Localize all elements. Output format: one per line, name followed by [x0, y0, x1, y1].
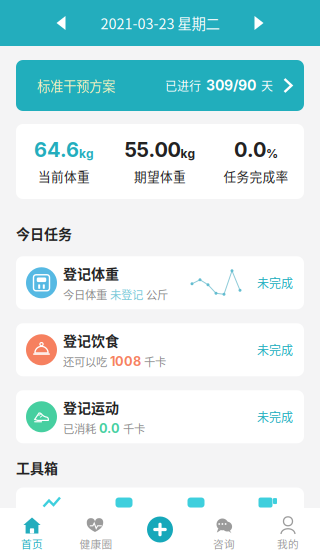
staticText: 未登记 [110, 286, 143, 303]
staticText: 任务完成率 [223, 167, 288, 185]
staticText: 未完成 [257, 341, 293, 358]
button[interactable]: 健康圈 [64, 508, 128, 551]
staticText: 55.00 [124, 138, 180, 162]
staticText: 咨询 [213, 536, 235, 551]
button[interactable]: 我的 [256, 508, 320, 551]
staticText: 健康圈 [79, 536, 112, 551]
staticText: 登记运动 [63, 397, 119, 417]
staticText: % [266, 146, 278, 161]
staticText: 还可以吃 [63, 353, 107, 370]
staticText: 登记体重 [63, 263, 119, 283]
button[interactable]: 工具 [88, 487, 160, 549]
staticText: 期望体重 [134, 167, 186, 185]
button[interactable]: 工具 [232, 487, 304, 549]
staticText: 当前体重 [38, 167, 90, 185]
staticText: 1008 [110, 354, 141, 369]
staticText: 今日任务 [16, 223, 72, 243]
button[interactable]: 首页 [0, 508, 64, 551]
button[interactable]: Add [128, 508, 192, 551]
button[interactable]: Next day [237, 0, 281, 46]
button[interactable]: 工具 [160, 487, 232, 549]
button[interactable]: 咨询 [192, 508, 256, 551]
staticText: 工具箱 [16, 457, 58, 478]
staticText: 我的 [277, 536, 299, 551]
staticText: 千卡 [144, 353, 166, 370]
staticText: 64.6 [34, 138, 79, 162]
staticText: 0.0 [99, 421, 120, 436]
staticText: 309/90 [206, 77, 256, 94]
button[interactable]: 登记饮食 [16, 323, 304, 376]
button[interactable]: 登记运动 [16, 390, 304, 443]
staticText: 未完成 [257, 408, 293, 425]
staticText: 0.0 [234, 138, 266, 162]
staticText: 已进行 [165, 77, 201, 94]
staticText: 标准干预方案 [37, 76, 115, 95]
staticText: 今日体重 [63, 286, 107, 303]
button[interactable]: Previous day [39, 0, 83, 46]
button[interactable]: 登记体重 [16, 256, 304, 309]
staticText: kg [79, 146, 94, 161]
staticText: kg [180, 146, 195, 161]
button[interactable]: 标准干预方案 [16, 60, 304, 111]
button[interactable]: 工具 [16, 487, 88, 549]
staticText: 天 [261, 77, 273, 94]
staticText: 未完成 [257, 274, 293, 291]
staticText: 公斤 [146, 286, 168, 303]
staticText: 登记饮食 [63, 330, 119, 350]
staticText: 2021-03-23 星期二 [100, 13, 219, 33]
staticText: 首页 [21, 536, 43, 551]
staticText: 千卡 [123, 420, 145, 437]
staticText: 已消耗 [63, 420, 96, 437]
